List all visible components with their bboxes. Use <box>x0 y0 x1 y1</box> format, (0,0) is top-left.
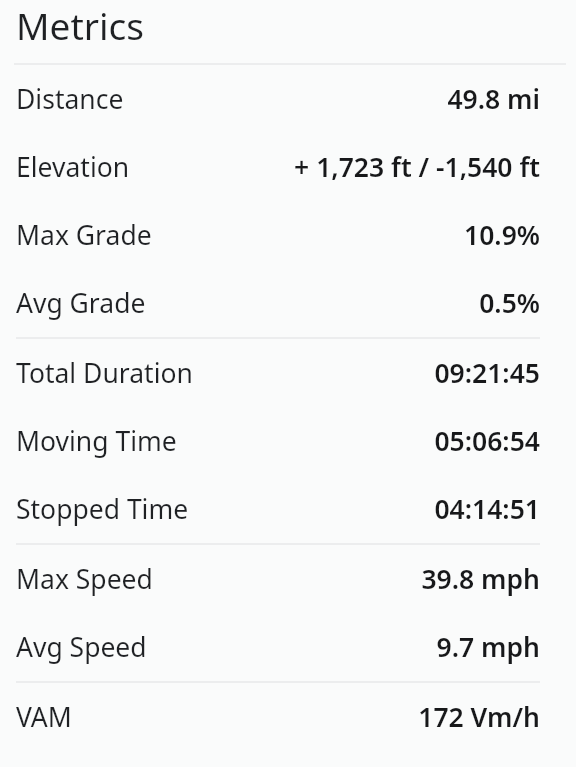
staticText: Metrics <box>16 0 145 45</box>
staticText: 0.5% <box>479 285 540 321</box>
staticText: Moving Time <box>16 423 177 459</box>
button[interactable]: Total Duration <box>0 339 576 407</box>
staticText: 9.7 mph <box>436 629 540 665</box>
button[interactable]: Max Grade <box>0 201 576 269</box>
staticText: 09:21:45 <box>434 355 540 391</box>
staticText: 04:14:51 <box>434 491 540 527</box>
button[interactable]: Max Speed <box>0 545 576 613</box>
staticText: VAM <box>16 699 72 735</box>
staticText: Avg Speed <box>16 629 147 665</box>
button[interactable]: Avg Speed <box>0 613 576 681</box>
staticText: + 1,723 ft / -1,540 ft <box>294 149 540 185</box>
button[interactable]: VAM <box>0 683 576 751</box>
staticText: 39.8 mph <box>421 561 540 597</box>
staticText: 172 Vm/h <box>418 699 540 735</box>
button[interactable]: Elevation <box>0 133 576 201</box>
button[interactable]: Stopped Time <box>0 475 576 543</box>
button[interactable]: Avg Grade <box>0 269 576 337</box>
staticText: Avg Grade <box>16 285 146 321</box>
staticText: Max Speed <box>16 561 153 597</box>
staticText: Total Duration <box>16 355 193 391</box>
staticText: 10.9% <box>464 217 540 253</box>
staticText: Distance <box>16 81 124 117</box>
other: Metrics summary <box>0 0 576 767</box>
staticText: Elevation <box>16 149 130 185</box>
staticText: Stopped Time <box>16 491 189 527</box>
button[interactable]: Moving Time <box>0 407 576 475</box>
button[interactable]: Distance <box>0 65 576 133</box>
staticText: Max Grade <box>16 217 152 253</box>
staticText: 05:06:54 <box>434 423 540 459</box>
staticText: 49.8 mi <box>447 81 540 117</box>
